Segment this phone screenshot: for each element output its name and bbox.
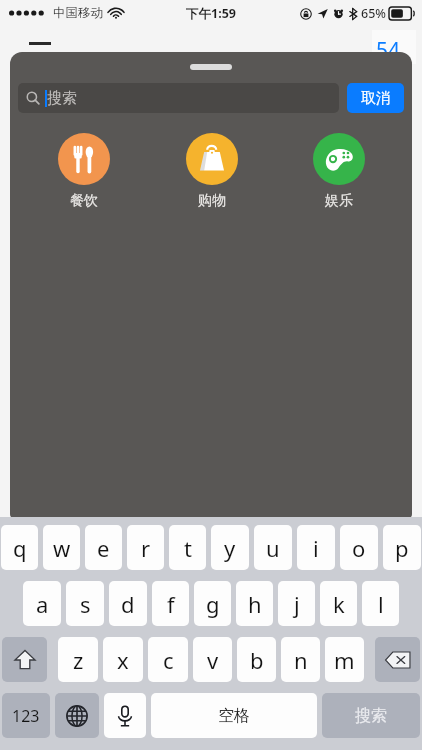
staticText: z [73,645,84,675]
staticText: p [395,533,409,563]
button[interactable]: q [1,525,38,570]
staticText: 取消 [361,89,391,108]
staticText: 搜索 [47,89,77,108]
button[interactable]: 搜索 [322,693,420,738]
staticText: 下午1:59 [186,5,236,22]
staticText: n [294,645,308,675]
button[interactable]: y [211,525,249,570]
button[interactable]: 餐饮 [20,131,148,212]
button[interactable]: r [127,525,164,570]
button[interactable]: b [237,637,276,682]
button[interactable]: t [169,525,206,570]
staticText: x [117,645,129,675]
staticText: k [333,589,345,619]
button[interactable]: o [340,525,378,570]
button[interactable]: f [152,581,189,626]
staticText: f [167,589,175,619]
staticText: j [294,589,300,619]
staticText: b [250,645,264,675]
staticText: 中国移动 [53,5,103,21]
button[interactable]: e [85,525,122,570]
button[interactable]: Backspace [375,637,420,682]
button[interactable]: j [278,581,315,626]
button[interactable]: 123 [2,693,50,738]
staticText: 空格 [218,706,250,726]
staticText: 123 [12,705,40,727]
button[interactable]: Dictation [104,693,146,738]
button[interactable]: p [383,525,421,570]
button[interactable]: g [194,581,231,626]
button[interactable]: x [103,637,143,682]
button[interactable]: Switch keyboard [55,693,99,738]
button[interactable]: 娱乐 [275,131,402,212]
button[interactable]: i [297,525,335,570]
staticText: i [313,533,319,563]
staticText: a [36,589,49,619]
staticText: m [334,645,355,675]
button[interactable]: n [281,637,320,682]
staticText: d [121,589,135,619]
button[interactable]: 取消 [347,83,404,113]
button[interactable]: h [236,581,273,626]
staticText: w [53,533,71,563]
button[interactable]: u [254,525,292,570]
staticText: q [13,533,27,563]
staticText: y [224,533,236,563]
button[interactable]: m [325,637,364,682]
button[interactable]: a [23,581,61,626]
button[interactable]: Shift [2,637,47,682]
button[interactable]: 购物 [148,131,275,212]
staticText: 搜索 [355,706,387,726]
staticText: v [207,645,219,675]
button[interactable]: 空格 [151,693,317,738]
button[interactable]: s [66,581,104,626]
staticText: c [163,645,174,675]
staticText: 购物 [198,192,226,210]
staticText: e [97,533,110,563]
button[interactable]: c [148,637,188,682]
staticText: t [184,533,192,563]
staticText: 餐饮 [70,192,98,210]
button[interactable]: l [362,581,399,626]
staticText: r [141,533,151,563]
staticText: g [206,589,220,619]
staticText: 65% [361,5,386,22]
button[interactable]: d [109,581,147,626]
staticText: h [248,589,262,619]
staticText: 54 [376,36,401,65]
staticText: s [80,589,91,619]
button[interactable]: k [320,581,357,626]
staticText: o [352,533,366,563]
staticText: l [378,589,384,619]
staticText: u [266,533,280,563]
button[interactable]: w [43,525,80,570]
staticText: 娱乐 [325,192,353,210]
button[interactable]: 搜索 [18,83,339,113]
button[interactable]: z [58,637,98,682]
button[interactable]: v [193,637,232,682]
